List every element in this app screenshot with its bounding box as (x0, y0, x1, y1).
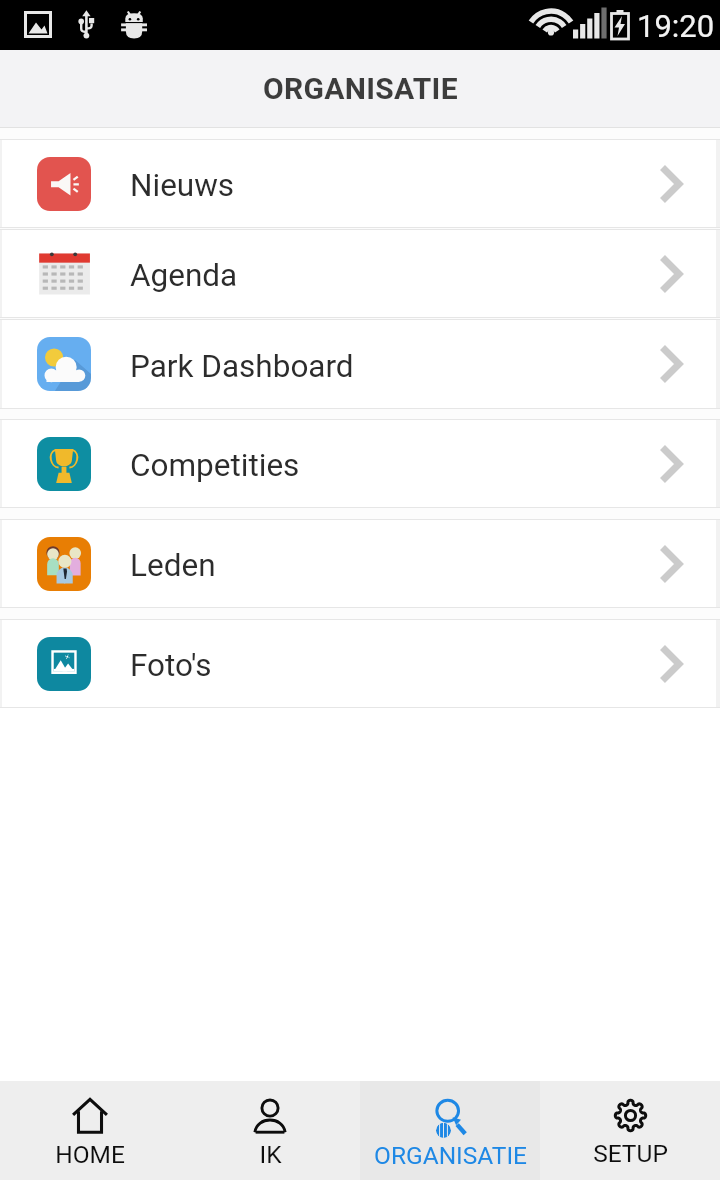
button[interactable]: Agenda (2, 230, 716, 317)
other: Organisatie (433, 1098, 468, 1135)
staticText: ORGANISATIE (263, 71, 458, 106)
staticText: Agenda (130, 257, 238, 294)
other: Profile (252, 1098, 288, 1134)
button[interactable]: Park Dashboard (2, 320, 716, 408)
button[interactable]: Foto's (2, 620, 716, 707)
button[interactable]: Organisatie (360, 1081, 540, 1180)
button[interactable]: Setup (540, 1081, 720, 1180)
staticText: Competities (130, 447, 300, 484)
button[interactable]: Home (0, 1081, 180, 1180)
staticText: Foto's (130, 647, 212, 684)
staticText: Nieuws (130, 167, 235, 204)
staticText: IK (259, 1140, 282, 1169)
staticText: Leden (130, 547, 216, 584)
staticText: Park Dashboard (130, 348, 354, 385)
staticText: SETUP (593, 1139, 668, 1168)
button[interactable]: Leden (2, 520, 716, 607)
staticText: 19:20 (637, 8, 715, 44)
staticText: ORGANISATIE (374, 1141, 527, 1170)
other: Home (72, 1098, 108, 1134)
other: Setup (613, 1098, 648, 1133)
button[interactable]: Profile (180, 1081, 360, 1180)
button[interactable]: Nieuws (2, 140, 716, 227)
button[interactable]: Competities (2, 420, 716, 507)
staticText: HOME (55, 1140, 125, 1169)
